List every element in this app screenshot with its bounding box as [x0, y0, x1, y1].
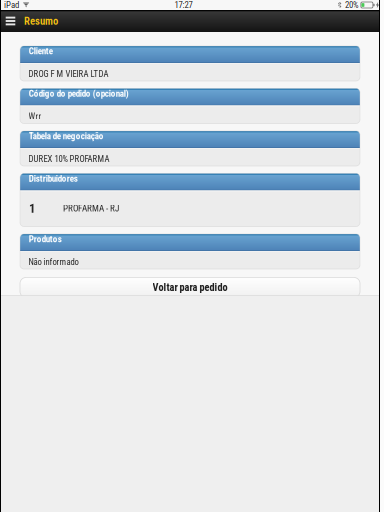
button[interactable]: Voltar para pedido	[20, 277, 360, 297]
staticText: Cliente	[29, 46, 53, 56]
staticText: PROFARMA - RJ	[63, 203, 119, 214]
staticText: Voltar para pedido	[152, 281, 227, 293]
staticText: Tabela de negociação	[29, 131, 104, 141]
staticText: DROG F M VIEIRA LTDA	[29, 69, 109, 79]
staticText: Wrr	[29, 111, 42, 122]
staticText: 20%	[345, 0, 359, 10]
staticText: Distribuidores	[29, 173, 78, 184]
button[interactable]: Menu	[1, 10, 20, 32]
staticText: Resumo	[24, 15, 58, 27]
staticText: iPad	[4, 0, 19, 10]
staticText: 1	[29, 201, 35, 216]
staticText: DUREX 10% PROFARMA	[29, 154, 110, 164]
staticText: 17:27	[175, 0, 193, 10]
staticText: Não informado	[29, 257, 79, 267]
staticText: Código do pedido (opcional)	[29, 88, 129, 99]
staticText: Produtos	[29, 234, 62, 244]
